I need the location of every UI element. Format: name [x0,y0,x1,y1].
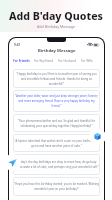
button[interactable]: "Another year older, wiser and just keep… [13,90,100,112]
staticText: "Hope you have this birthday started, yo… [14,182,99,191]
button[interactable]: For Friends [13,59,30,63]
button[interactable]: For Husband [58,59,77,63]
button[interactable]: For Boyfriend [34,59,54,63]
button[interactable]: Send quote [4,154,21,171]
staticText: For Husband [58,59,77,63]
staticText: "Today's the day birthdays are okay to m… [14,160,99,169]
staticText: For Boyfriend [34,59,54,63]
button[interactable]: For Wife [81,59,93,63]
button[interactable]: Copy quote [89,128,106,145]
staticText: Birthday Message [38,48,76,54]
staticText: "Happy birthday to you! Here is to anoth… [14,72,99,86]
staticText: 9:41 [14,43,21,47]
button[interactable]: "Today's the day birthdays are okay to m… [13,154,100,175]
staticText: "A hipster admitted that wishes don't co… [14,139,99,148]
staticText: "Another year older, wiser and just keep… [14,94,99,108]
button[interactable]: "Happy birthday to you! Here is to anoth… [13,69,100,88]
staticText: "Your phenomenal within and out. So glad… [14,119,99,128]
staticText: For Wife [81,59,93,63]
staticText: For Friends [13,59,30,63]
button[interactable]: "A hipster admitted that wishes don't co… [13,134,100,152]
staticText: Add B'day Quotes [0,9,112,23]
button[interactable]: "Hope you have this birthday started, yo… [13,177,100,196]
staticText: Add Birthday Message [0,24,112,29]
button[interactable]: "Your phenomenal within and out. So glad… [13,114,100,132]
